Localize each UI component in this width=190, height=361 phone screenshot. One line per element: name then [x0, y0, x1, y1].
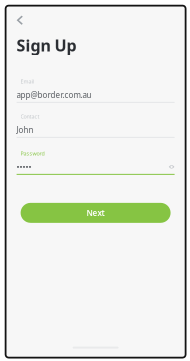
staticText: Next	[87, 207, 105, 218]
staticText: •••••	[17, 161, 32, 172]
button[interactable]: Next	[21, 203, 171, 223]
staticText: Email	[21, 78, 34, 85]
button[interactable]: Back	[17, 16, 33, 26]
staticText: Contact	[21, 113, 40, 120]
staticText: John	[17, 124, 34, 135]
staticText: Sign Up	[17, 35, 77, 56]
staticText: Password	[21, 150, 45, 157]
staticText: app@border.com.au	[17, 89, 92, 100]
